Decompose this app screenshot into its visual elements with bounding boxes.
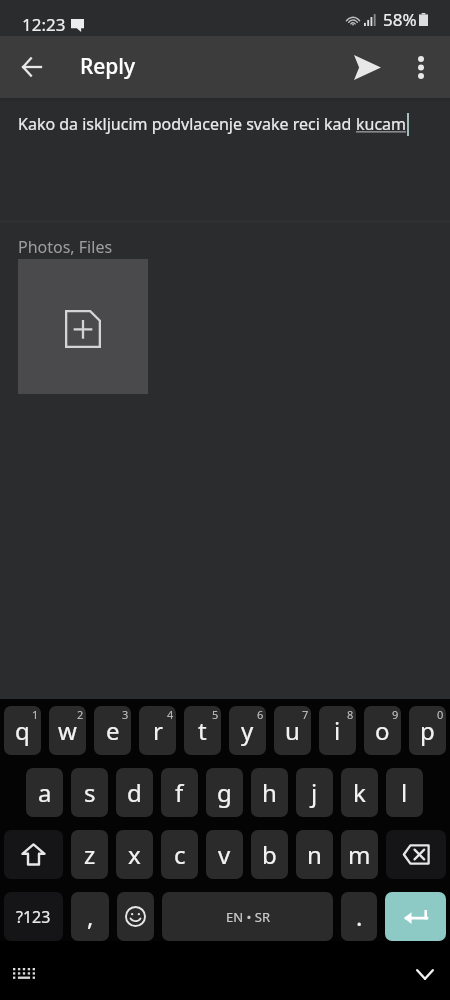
button[interactable]: w [49,706,86,755]
button[interactable]: o [364,706,401,755]
staticText: p [420,714,435,747]
button[interactable]: z [71,830,108,879]
staticText: z [84,838,96,871]
staticText: 58% [383,8,417,31]
button[interactable]: Backspace [386,830,446,879]
staticText: q [15,714,30,747]
staticText: 12:23 [22,13,66,36]
button[interactable]: Add attachment [18,259,148,394]
staticText: s [84,776,96,809]
staticText: EN • SR [226,908,270,926]
staticText: u [285,714,300,747]
button[interactable]: n [296,830,333,879]
staticText: l [401,776,408,809]
button[interactable]: g [206,768,243,817]
staticText: i [334,714,341,747]
button[interactable]: Shift [4,830,63,879]
button[interactable]: j [296,768,333,817]
button[interactable]: y [229,706,266,755]
button[interactable]: r [139,706,176,755]
button[interactable]: Keyboard settings [6,956,42,992]
button[interactable]: b [251,830,288,879]
button[interactable]: a [26,768,63,817]
button[interactable]: m [341,830,378,879]
staticText: j [311,776,318,809]
staticText: x [128,838,141,871]
button[interactable]: l [386,768,423,817]
staticText: 3 [122,707,129,722]
staticText: y [241,714,254,747]
staticText: kucam [356,113,407,135]
button[interactable]: . [341,892,377,941]
staticText: f [175,776,184,809]
staticText: t [198,714,207,747]
staticText: 2 [77,707,84,722]
staticText: g [217,776,232,809]
button[interactable]: k [341,768,378,817]
button[interactable]: v [206,830,243,879]
button[interactable]: More options [398,44,444,90]
staticText: Kako da iskljucim podvlacenje svake reci… [18,113,356,135]
staticText: c [174,838,186,871]
button[interactable]: d [116,768,153,817]
button[interactable]: e [94,706,131,755]
button[interactable]: x [116,830,153,879]
staticText: r [153,714,163,747]
staticText: . [356,900,363,933]
button[interactable]: , [71,892,109,941]
button[interactable]: Emoji [117,892,154,941]
staticText: e [106,714,120,747]
staticText: m [348,838,371,871]
button[interactable]: Enter [385,892,446,941]
staticText: h [262,776,277,809]
staticText: ?123 [16,906,51,928]
button[interactable]: Hide keyboard [407,956,443,992]
staticText: 7 [302,707,309,722]
button[interactable]: s [71,768,108,817]
staticText: Reply [80,52,136,81]
button[interactable]: Send [344,44,390,90]
staticText: o [375,714,390,747]
staticText: w [58,714,77,747]
button[interactable]: q [4,706,41,755]
button[interactable]: f [161,768,198,817]
button[interactable]: Space [162,892,333,941]
button[interactable]: i [319,706,356,755]
staticText: 1 [32,707,39,722]
button[interactable]: Back [7,43,55,91]
button[interactable]: h [251,768,288,817]
staticText: v [218,838,231,871]
staticText: , [87,900,94,933]
staticText: 8 [347,707,354,722]
staticText: 5 [212,707,219,722]
button[interactable]: c [161,830,198,879]
staticText: a [38,776,52,809]
button[interactable]: Symbols [4,892,63,941]
staticText: Photos, Files [18,236,113,258]
staticText: 6 [257,707,264,722]
button[interactable]: t [184,706,221,755]
staticText: d [127,776,142,809]
staticText: 4 [167,707,174,722]
staticText: 9 [392,707,399,722]
staticText: 0 [437,707,444,722]
staticText: b [262,838,277,871]
staticText: n [307,838,322,871]
staticText: k [353,776,366,809]
button[interactable]: p [409,706,446,755]
button[interactable]: u [274,706,311,755]
